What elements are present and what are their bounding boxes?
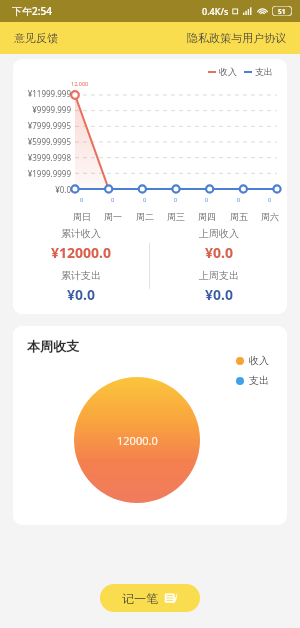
staticText: 0 <box>205 196 209 203</box>
staticText: 周六 <box>261 211 279 222</box>
staticText: 0 <box>268 196 272 203</box>
staticText: 周一 <box>104 211 122 222</box>
staticText: 本周收支 <box>27 338 79 354</box>
staticText: 0 <box>237 196 241 203</box>
button[interactable]: 意见反馈 <box>12 27 60 49</box>
staticText: ¥0.0 <box>205 243 233 262</box>
staticText: 周五 <box>230 211 248 222</box>
staticText: 记一笔 <box>122 591 158 606</box>
staticText: 上周收入 <box>199 227 239 240</box>
staticText: 下午2:54 <box>12 4 52 18</box>
staticText: ¥11999.999 <box>15 88 71 99</box>
staticText: 隐私政策与用户协议 <box>187 31 286 45</box>
staticText: ¥5999.9995 <box>15 136 71 147</box>
staticText: ¥0.0 <box>205 285 233 304</box>
staticText: 支出 <box>255 66 273 77</box>
staticText: 收入 <box>219 66 237 77</box>
staticText: ¥0.0 <box>67 285 95 304</box>
staticText: 意见反馈 <box>14 31 58 45</box>
staticText: 12000.0 <box>117 433 158 448</box>
staticText: 0 <box>143 196 147 203</box>
staticText: ¥7999.9995 <box>15 120 71 131</box>
staticText: 周日 <box>73 211 91 222</box>
staticText: 周四 <box>198 211 216 222</box>
staticText: ¥12000.0 <box>51 243 111 262</box>
staticText: ¥9999.999 <box>15 104 71 115</box>
staticText: 12,000 <box>71 80 97 87</box>
button[interactable]: 记一笔 <box>100 584 200 612</box>
staticText: ¥3999.9998 <box>15 152 71 163</box>
staticText: 0 <box>80 196 84 203</box>
staticText: 0 <box>111 196 115 203</box>
staticText: 周二 <box>136 211 154 222</box>
button[interactable]: 隐私政策与用户协议 <box>185 27 288 49</box>
staticText: 累计支出 <box>61 269 101 282</box>
staticText: ¥1999.9999 <box>15 168 71 179</box>
staticText: 51 <box>278 7 286 16</box>
button[interactable]: 收入 <box>236 354 269 367</box>
button[interactable]: 支出 <box>236 374 269 387</box>
staticText: 支出 <box>249 374 269 387</box>
staticText: 累计收入 <box>61 227 101 240</box>
staticText: ¥0.0 <box>15 184 71 195</box>
staticText: 0 <box>174 196 178 203</box>
staticText: 0.4K/s <box>202 5 229 17</box>
staticText: 上周支出 <box>199 269 239 282</box>
staticText: 收入 <box>249 354 269 367</box>
staticText: 周三 <box>167 211 185 222</box>
